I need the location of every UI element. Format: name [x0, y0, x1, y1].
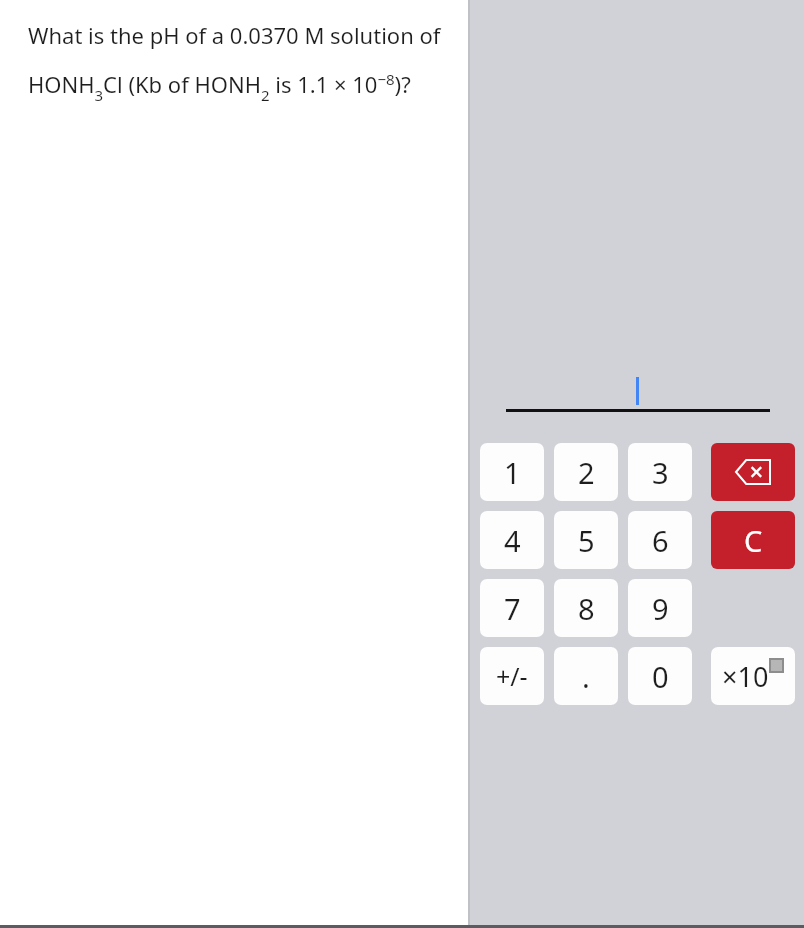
button[interactable]: Backspace	[711, 443, 795, 501]
button[interactable]: 5	[554, 511, 618, 569]
button[interactable]: 8	[554, 579, 618, 637]
button[interactable]: 0	[628, 647, 692, 705]
staticText: 8	[578, 589, 595, 628]
button[interactable]: .	[554, 647, 618, 705]
staticText: 7	[504, 589, 521, 628]
staticText: What is the pH of a 0.0370 M solution of…	[28, 20, 446, 105]
staticText: 2	[578, 453, 595, 492]
staticText: +/-	[496, 659, 528, 693]
button[interactable]: 7	[480, 579, 544, 637]
staticText: 0	[652, 657, 669, 696]
button[interactable]: C	[711, 511, 795, 569]
staticText: .	[582, 657, 590, 696]
staticText: 5	[578, 521, 595, 560]
staticText: 4	[504, 521, 521, 560]
button[interactable]	[470, 371, 804, 409]
staticText: 6	[652, 521, 669, 560]
staticText: 1	[504, 453, 521, 492]
button[interactable]: 2	[554, 443, 618, 501]
button[interactable]: 4	[480, 511, 544, 569]
button[interactable]: 3	[628, 443, 692, 501]
staticText: 3	[652, 453, 669, 492]
staticText: 9	[652, 589, 669, 628]
button[interactable]: 6	[628, 511, 692, 569]
button[interactable]: 9	[628, 579, 692, 637]
staticText: C	[744, 521, 763, 560]
button[interactable]: 1	[480, 443, 544, 501]
button[interactable]: +/-	[480, 647, 544, 705]
button[interactable]: ×10	[711, 647, 795, 705]
staticText: ×10	[722, 658, 769, 695]
